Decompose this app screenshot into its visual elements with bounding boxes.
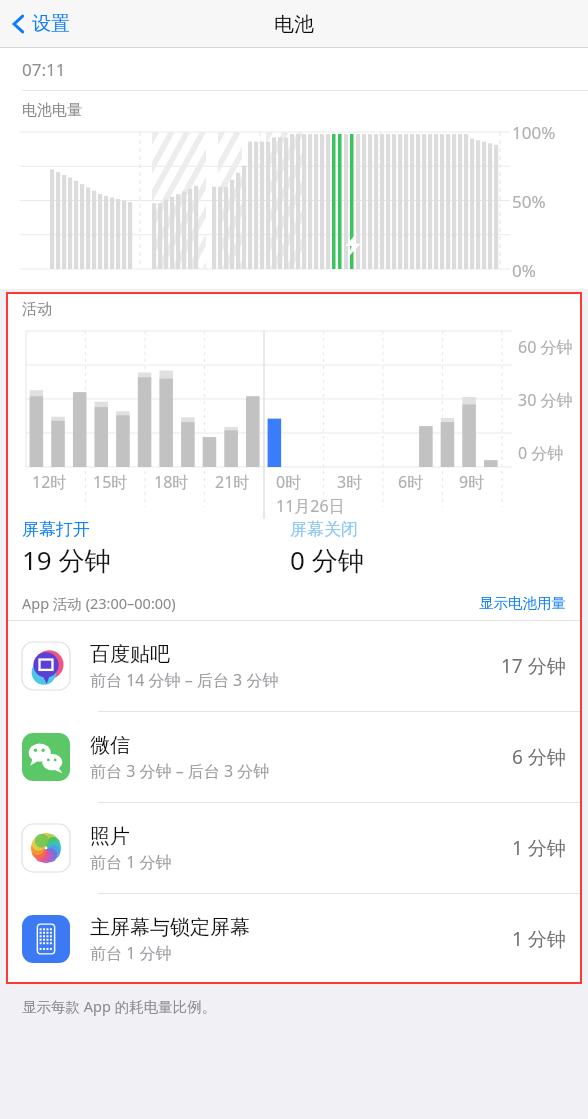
staticText: 100% xyxy=(512,121,556,144)
staticText: 0% xyxy=(512,259,536,282)
staticText: 活动 xyxy=(22,300,52,319)
staticText: 21时 xyxy=(215,471,250,493)
button[interactable]: 设置 xyxy=(6,6,76,42)
staticText: 照片 xyxy=(90,824,130,849)
staticText: 3时 xyxy=(337,471,363,493)
staticText: 显示电池用量 xyxy=(479,594,566,612)
staticText: 前台 14 分钟 – 后台 3 分钟 xyxy=(90,669,279,691)
staticText: 15时 xyxy=(93,471,128,493)
staticText: 微信 xyxy=(90,733,130,758)
staticText: 6时 xyxy=(398,471,424,493)
staticText: 显示每款 App 的耗电量比例。 xyxy=(22,996,217,1016)
staticText: 屏幕打开 xyxy=(22,519,90,540)
staticText: 前台 3 分钟 – 后台 3 分钟 xyxy=(90,760,270,782)
staticText: 1 分钟 xyxy=(512,926,566,952)
button[interactable]: 微信 xyxy=(6,712,582,802)
staticText: 60 分钟 xyxy=(518,336,573,358)
staticText: 6 分钟 xyxy=(512,744,566,770)
button[interactable]: 显示电池用量 xyxy=(477,592,568,614)
staticText: 19 分钟 xyxy=(22,542,111,578)
staticText: 电池 xyxy=(274,12,314,37)
staticText: 50% xyxy=(512,190,546,213)
staticText: 0 分钟 xyxy=(518,442,564,464)
staticText: 9时 xyxy=(459,471,485,493)
staticText: 18时 xyxy=(154,471,189,493)
staticText: 0时 xyxy=(276,471,302,493)
staticText: 前台 1 分钟 xyxy=(90,851,172,873)
button[interactable]: 主屏幕与锁定屏幕 xyxy=(6,894,582,984)
staticText: 0 分钟 xyxy=(290,542,364,578)
staticText: 30 分钟 xyxy=(518,389,573,411)
staticText: 设置 xyxy=(32,12,70,36)
staticText: 百度贴吧 xyxy=(90,642,170,667)
staticText: 前台 1 分钟 xyxy=(90,942,172,964)
staticText: 17 分钟 xyxy=(501,653,566,679)
staticText: App 活动 (23:00–00:00) xyxy=(22,593,176,613)
staticText: 主屏幕与锁定屏幕 xyxy=(90,915,250,940)
staticText: 1 分钟 xyxy=(512,835,566,861)
staticText: 屏幕关闭 xyxy=(290,519,358,540)
staticText: 电池电量 xyxy=(22,101,82,120)
staticText: 11月26日 xyxy=(276,495,345,517)
button[interactable]: 百度贴吧 xyxy=(6,621,582,711)
staticText: 12时 xyxy=(32,471,67,493)
button[interactable]: 照片 xyxy=(6,803,582,893)
staticText: 07:11 xyxy=(22,58,66,81)
